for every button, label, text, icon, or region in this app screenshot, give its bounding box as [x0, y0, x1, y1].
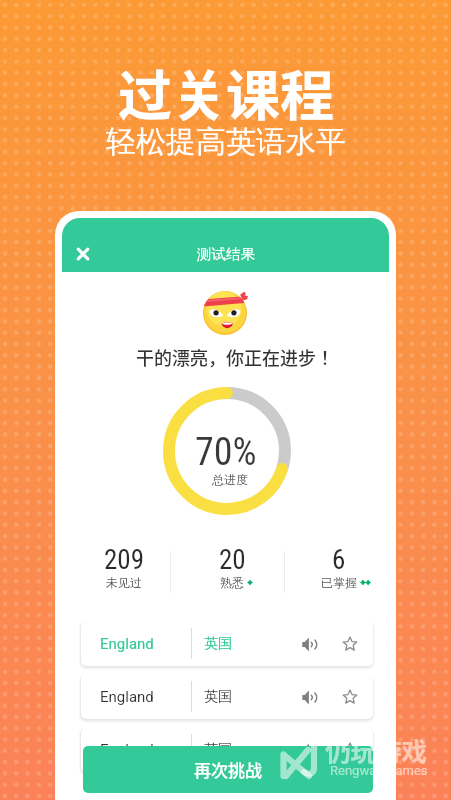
staticText: 英国: [204, 635, 232, 653]
button[interactable]: Favourite: [337, 737, 363, 763]
staticText: 过关课程: [118, 53, 334, 131]
button[interactable]: Favourite: [337, 684, 363, 710]
staticText: 再次挑战: [194, 757, 262, 782]
staticText: 测试结果: [197, 245, 255, 263]
button[interactable]: 20: [182, 544, 282, 594]
button[interactable]: Favourite: [337, 631, 363, 657]
staticText: 20: [219, 544, 246, 576]
staticText: 6: [332, 544, 346, 576]
button[interactable]: Play pronunciation: [296, 684, 322, 710]
button[interactable]: England: [81, 621, 373, 666]
staticText: 209: [104, 544, 144, 576]
button[interactable]: England: [81, 674, 373, 719]
staticText: 轻松提高英语水平: [106, 123, 346, 161]
button[interactable]: England: [81, 727, 373, 772]
staticText: 仍玩游戏: [325, 731, 428, 768]
staticText: 70%: [195, 430, 257, 475]
staticText: 英国: [204, 688, 232, 706]
staticText: England: [100, 688, 154, 706]
staticText: 未见过: [106, 575, 142, 590]
staticText: England: [100, 741, 154, 759]
button[interactable]: 6: [289, 544, 389, 594]
button[interactable]: Play pronunciation: [296, 737, 322, 763]
staticText: 已掌握: [321, 575, 357, 590]
button[interactable]: 再次挑战: [83, 746, 373, 793]
button[interactable]: Play pronunciation: [296, 631, 322, 657]
button[interactable]: Close: [69, 240, 97, 268]
staticText: 英国: [204, 741, 232, 759]
staticText: 总进度: [212, 472, 248, 487]
button[interactable]: 209: [74, 544, 174, 594]
staticText: England: [100, 635, 154, 653]
staticText: 熟悉: [220, 575, 244, 590]
staticText: Rengwan Games: [330, 763, 428, 778]
staticText: 干的漂亮，你正在进步！: [136, 344, 334, 370]
